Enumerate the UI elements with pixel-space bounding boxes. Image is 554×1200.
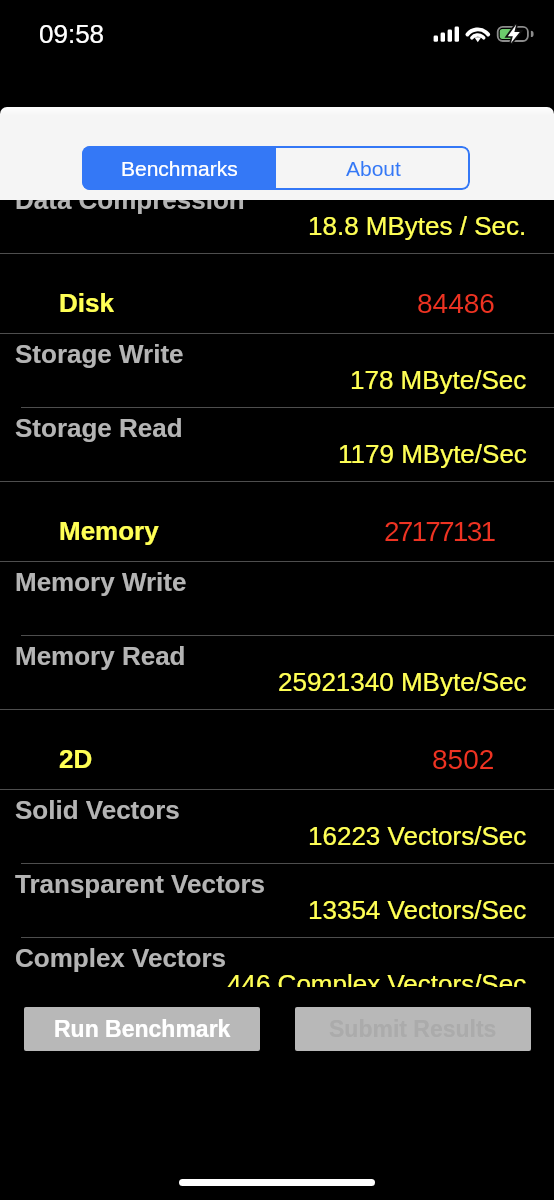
button[interactable]: Memory Read <box>0 636 554 710</box>
button[interactable]: Run Benchmark <box>24 1007 260 1051</box>
button[interactable]: Benchmarks <box>82 146 276 190</box>
button[interactable]: Submit Results <box>295 1007 531 1051</box>
staticText: Benchmarks <box>121 157 238 180</box>
staticText: Run Benchmark <box>54 1016 231 1042</box>
staticText: Transparent Vectors <box>15 869 265 898</box>
button[interactable]: Storage Read <box>0 408 554 482</box>
staticText: Memory Read <box>15 641 186 670</box>
staticText: Storage Read <box>15 413 183 442</box>
staticText: Data Compression <box>15 185 245 214</box>
button[interactable]: Transparent Vectors <box>0 864 554 938</box>
button[interactable]: About <box>276 146 470 190</box>
staticText: 18.8 MBytes / Sec. <box>308 211 527 240</box>
staticText: 27177131 <box>384 516 495 547</box>
button[interactable]: Disk <box>0 254 554 334</box>
staticText: 446 Complex Vectors/Sec <box>227 969 527 987</box>
staticText: Complex Vectors <box>15 943 226 972</box>
staticText: 25921340 MByte/Sec <box>278 667 527 696</box>
button[interactable]: Complex Vectors <box>0 938 554 987</box>
staticText: About <box>346 157 401 180</box>
staticText: 13354 Vectors/Sec <box>308 895 527 924</box>
staticText: 84486 <box>417 288 495 319</box>
button[interactable]: Data Compression <box>0 180 554 254</box>
staticText: 2D <box>59 744 93 773</box>
staticText: Solid Vectors <box>15 795 180 824</box>
staticText: 16223 Vectors/Sec <box>308 821 527 850</box>
staticText: 8502 <box>432 744 495 775</box>
staticText: Memory Write <box>15 567 187 596</box>
button[interactable]: Solid Vectors <box>0 790 554 864</box>
button[interactable]: Memory Write <box>0 562 554 636</box>
staticText: 178 MByte/Sec <box>350 365 527 394</box>
staticText: Disk <box>59 288 114 317</box>
staticText: Storage Write <box>15 339 184 368</box>
staticText: Memory <box>59 516 159 545</box>
staticText: 09:58 <box>39 19 105 48</box>
button[interactable]: Memory <box>0 482 554 562</box>
staticText: Submit Results <box>329 1016 497 1042</box>
button[interactable]: Storage Write <box>0 334 554 408</box>
staticText: 1179 MByte/Sec <box>338 439 527 468</box>
button[interactable]: 2D <box>0 710 554 790</box>
